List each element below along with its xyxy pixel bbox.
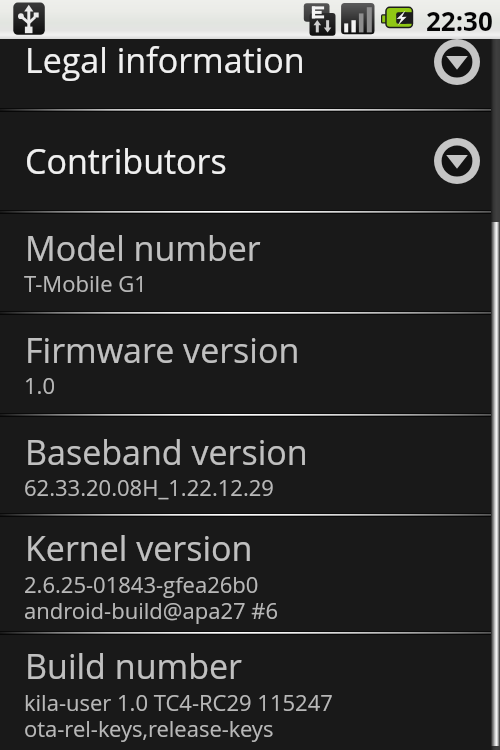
staticText: 2.6.25-01843-gfea26b0 android-build@apa2… (24, 569, 279, 626)
button[interactable]: Firmware version (0, 315, 500, 413)
staticText: 22:30 (426, 3, 493, 38)
staticText: 62.33.20.08H_1.22.12.29 (24, 472, 274, 502)
button[interactable]: Contributors (0, 112, 500, 211)
button[interactable]: Legal information (0, 39, 500, 109)
staticText: Build number (25, 643, 242, 689)
staticText: Contributors (25, 138, 227, 184)
staticText: Kernel version (25, 525, 253, 571)
staticText: Model number (25, 225, 261, 271)
other: Expand Contributors (433, 137, 481, 185)
button[interactable]: Model number (0, 214, 500, 311)
staticText: kila-user 1.0 TC4-RC29 115247 ota-rel-ke… (24, 687, 333, 744)
other: Expand Legal information (433, 38, 481, 86)
button[interactable]: Baseband version (0, 417, 500, 513)
button[interactable]: Kernel version (0, 517, 500, 631)
staticText: 1.0 (24, 370, 56, 400)
button[interactable]: Build number (0, 635, 500, 750)
staticText: Baseband version (25, 429, 308, 475)
staticText: T-Mobile G1 (24, 268, 147, 298)
staticText: Legal information (25, 37, 305, 83)
staticText: Firmware version (25, 327, 300, 373)
